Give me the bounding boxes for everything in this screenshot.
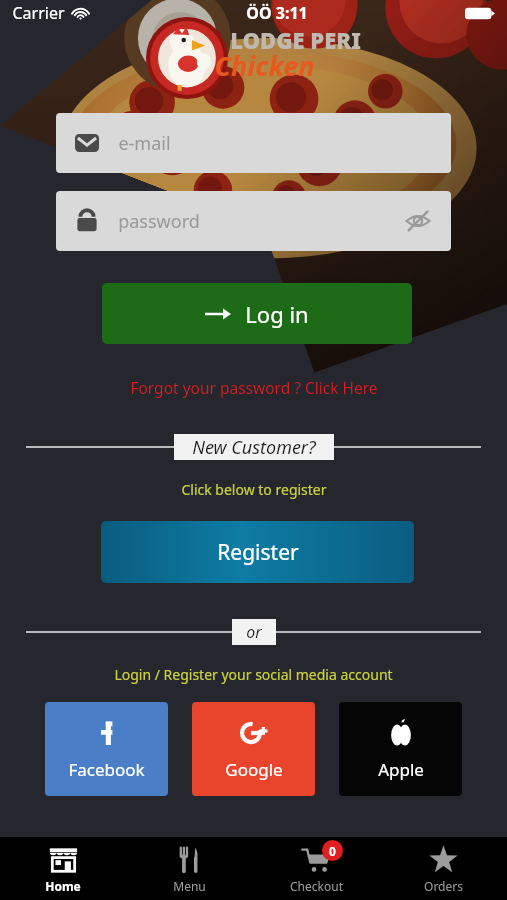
staticText: Log in <box>245 299 309 329</box>
button[interactable]: Apple <box>339 702 462 796</box>
staticText: Carrier <box>12 2 65 24</box>
staticText: Google <box>225 758 283 781</box>
button[interactable]: Log in <box>102 283 412 344</box>
staticText: or <box>246 621 262 643</box>
staticText: password <box>118 209 200 234</box>
staticText: Checkout <box>290 878 343 894</box>
button[interactable]: Register <box>101 521 414 583</box>
staticText: e-mail <box>118 131 171 156</box>
staticText: Forgot your password ? Click Here <box>130 377 378 398</box>
staticText: ÖÖ 3:11 <box>246 2 308 24</box>
button[interactable]: 0 <box>253 837 380 900</box>
button[interactable]: Home <box>0 837 126 900</box>
staticText: New Customer? <box>192 435 316 460</box>
staticText: 0 <box>329 843 336 859</box>
staticText: Facebook <box>68 758 145 781</box>
button[interactable]: e-mail <box>56 113 451 173</box>
staticText: Click below to register <box>181 480 327 499</box>
staticText: Login / Register your social media accou… <box>114 665 393 684</box>
staticText: Apple <box>378 758 424 781</box>
staticText: Register <box>217 538 299 567</box>
button[interactable]: password <box>56 191 451 251</box>
staticText: Chicken <box>214 47 315 84</box>
button[interactable]: Orders <box>380 837 507 900</box>
button[interactable]: Show password <box>401 204 435 238</box>
button[interactable]: Facebook <box>45 702 168 796</box>
button[interactable]: Forgot your password ? Click Here <box>0 377 507 398</box>
button[interactable]: Menu <box>126 837 253 900</box>
staticText: Home <box>45 878 81 894</box>
staticText: LODGE PERI <box>230 25 361 55</box>
button[interactable]: Google <box>192 702 315 796</box>
staticText: Menu <box>173 878 206 894</box>
staticText: Orders <box>424 878 463 894</box>
